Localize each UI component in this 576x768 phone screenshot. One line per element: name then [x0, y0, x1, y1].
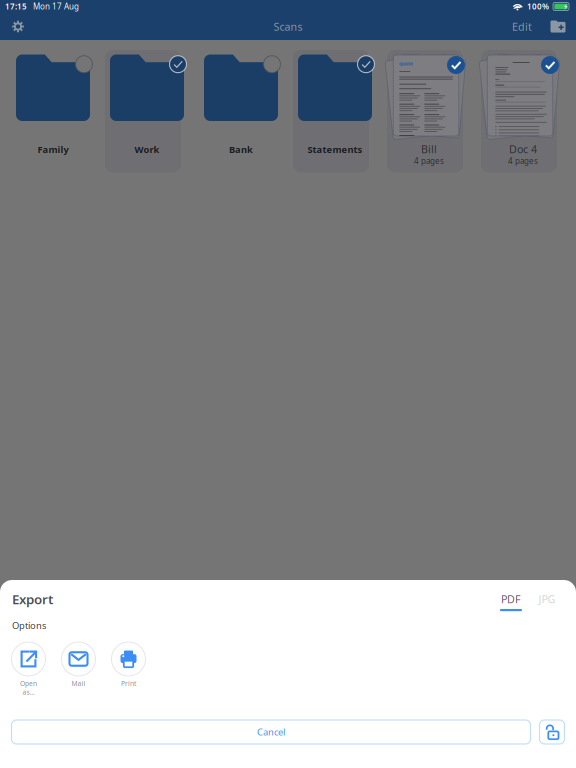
staticText: Bill — [421, 142, 437, 156]
staticText: Mail — [71, 679, 85, 688]
button[interactable]: Lock — [539, 720, 564, 744]
staticText: Bank — [229, 143, 253, 156]
button[interactable]: PDF — [498, 592, 524, 612]
staticText: Edit — [512, 19, 532, 34]
staticText: 4 pages — [414, 156, 444, 166]
button[interactable]: Bank — [204, 54, 280, 177]
button[interactable]: Work — [110, 54, 186, 177]
button[interactable]: Mail — [57, 642, 99, 696]
staticText: Options — [12, 619, 46, 632]
button[interactable]: Settings — [4, 13, 32, 40]
staticText: Open — [20, 679, 37, 688]
staticText: Family — [37, 143, 68, 156]
button[interactable]: Doc 4 — [486, 54, 562, 177]
staticText: Doc 4 — [509, 142, 537, 156]
button[interactable]: Print — [107, 642, 149, 696]
button[interactable]: Edit — [507, 13, 537, 40]
button[interactable]: Statements — [298, 54, 374, 177]
button[interactable]: New Folder — [545, 13, 571, 40]
staticText: quote — [399, 60, 413, 67]
staticText: Scans — [273, 19, 302, 34]
staticText: as… — [22, 688, 34, 697]
staticText: Work — [134, 143, 159, 156]
button[interactable]: JPG — [534, 592, 560, 612]
button[interactable]: Family — [16, 54, 92, 177]
staticText: PDF — [501, 592, 521, 606]
staticText: Print — [121, 679, 136, 688]
button[interactable]: Open — [7, 642, 49, 696]
staticText: Export — [12, 590, 53, 608]
staticText: Cancel — [257, 726, 285, 738]
staticText: 17:15 — [5, 1, 27, 12]
button[interactable]: Cancel — [11, 720, 530, 744]
staticText: Mon 17 Aug — [33, 1, 79, 12]
staticText: 4 pages — [508, 156, 538, 166]
button[interactable]: quote — [392, 54, 468, 177]
staticText: Statements — [307, 143, 362, 156]
staticText: JPG — [538, 592, 555, 606]
staticText: 100% — [527, 1, 549, 12]
